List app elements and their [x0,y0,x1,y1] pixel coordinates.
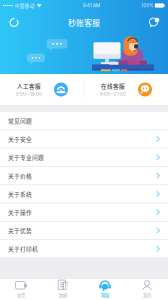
staticText: 9:41 AM [83,3,100,8]
button[interactable]: 在线客服 [84,73,168,105]
button[interactable]: 人工客服 [0,73,84,105]
button[interactable]: 数据 [42,278,84,300]
staticText: 9:00—21:00 [100,92,126,97]
staticText: 关于安全 [8,135,32,143]
staticText: 关于打印机 [8,245,38,253]
staticText: 发票 [17,292,25,298]
button[interactable]: 消息 [143,11,165,34]
staticText: 常见问题 [8,117,32,125]
staticText: 在线客服 [101,82,125,90]
button[interactable]: 发票 [0,278,42,300]
button[interactable]: 关于打印机 [0,240,168,258]
button[interactable]: 客服 [84,278,126,300]
staticText: 人工客服 [17,82,41,90]
button[interactable]: 我的 [126,278,168,300]
button[interactable]: 关于系统 [0,185,168,203]
staticText: 关于专业问题 [8,153,44,161]
button[interactable]: 关于安全 [0,130,168,149]
staticText: 我的 [143,292,151,298]
staticText: 关于优势 [8,226,32,235]
staticText: 客服 [101,292,109,298]
staticText: 关于系统 [8,190,32,198]
staticText: 数据 [59,292,67,298]
button[interactable]: 刷新 [3,11,25,34]
button[interactable]: 关于专业问题 [0,149,168,167]
staticText: 秒账客服 [68,17,100,28]
staticText: 中国移动 [15,2,35,9]
button[interactable]: 关于价格 [0,167,168,185]
staticText: 9:00—18:00 [16,92,42,97]
button[interactable]: 关于优势 [0,222,168,240]
staticText: 100% [141,3,153,8]
button[interactable]: 关于操作 [0,203,168,222]
staticText: 关于价格 [8,171,32,180]
staticText: 关于操作 [8,208,32,216]
